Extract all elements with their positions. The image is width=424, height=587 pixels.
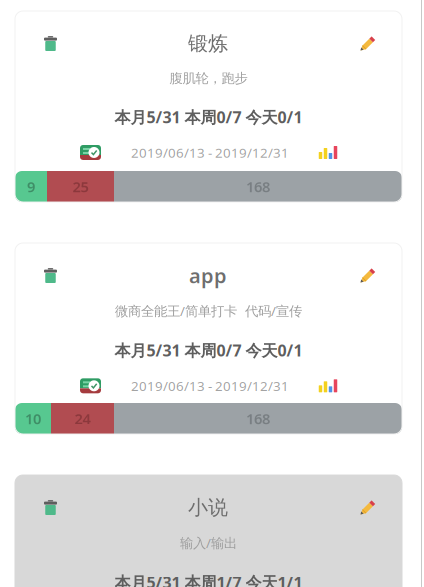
staticText: 25 bbox=[72, 177, 88, 196]
staticText: 24 bbox=[74, 409, 90, 428]
staticText: 10 bbox=[25, 409, 41, 428]
button[interactable]: app bbox=[15, 243, 402, 434]
staticText: 微商全能王/简单打卡 代码/宣传 bbox=[115, 302, 302, 320]
staticText: app bbox=[189, 262, 227, 289]
staticText: 本月5/31 本周1/7 今天1/1 bbox=[114, 572, 302, 587]
staticText: 2019/06/13 - 2019/12/31 bbox=[131, 144, 289, 161]
button[interactable]: Edit bbox=[351, 494, 402, 521]
staticText: 2019/06/13 - 2019/12/31 bbox=[131, 377, 289, 395]
button[interactable]: Delete bbox=[15, 494, 65, 521]
staticText: 锻炼 bbox=[188, 31, 228, 56]
button[interactable]: 锻炼 bbox=[15, 11, 402, 202]
button[interactable]: Edit bbox=[351, 30, 402, 57]
button[interactable]: 小说 bbox=[15, 475, 402, 587]
staticText: 168 bbox=[246, 409, 270, 428]
button[interactable]: Delete bbox=[15, 30, 65, 57]
button[interactable]: Edit bbox=[351, 262, 402, 289]
staticText: 小说 bbox=[188, 495, 228, 520]
staticText: 本月5/31 本周0/7 今天0/1 bbox=[114, 340, 302, 361]
staticText: 腹肌轮，跑步 bbox=[169, 70, 247, 86]
staticText: 本月5/31 本周0/7 今天0/1 bbox=[114, 106, 302, 128]
staticText: 168 bbox=[246, 177, 270, 196]
staticText: 输入/输出 bbox=[180, 534, 237, 552]
staticText: 9 bbox=[27, 177, 35, 196]
button[interactable]: Delete bbox=[15, 262, 65, 289]
